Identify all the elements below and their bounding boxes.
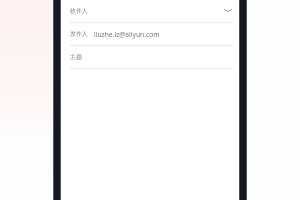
staticText: liuzhe.lz@aliyun.com: [94, 30, 160, 39]
button[interactable]: 主题: [61, 46, 239, 68]
staticText: 收件人: [70, 7, 88, 15]
button[interactable]: 收件人: [61, 0, 239, 22]
button[interactable]: 发件人: [61, 23, 239, 45]
staticText: 发件人: [70, 30, 88, 38]
staticText: 主题: [70, 53, 82, 61]
button[interactable]: Expand recipients: [222, 5, 233, 16]
